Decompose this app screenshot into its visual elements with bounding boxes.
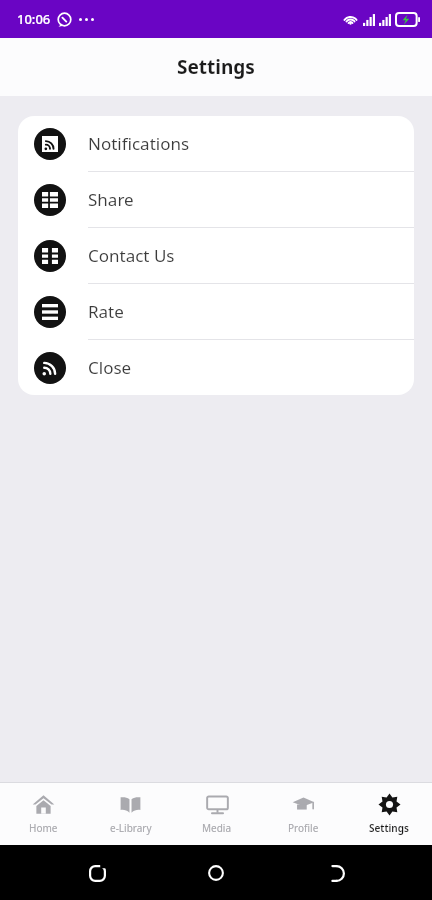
- staticText: Settings: [369, 821, 409, 835]
- button[interactable]: Recents: [74, 850, 120, 896]
- staticText: Profile: [288, 821, 319, 835]
- button[interactable]: Home: [0, 783, 87, 845]
- button[interactable]: e-Library: [87, 783, 174, 845]
- button[interactable]: Media: [174, 783, 260, 845]
- button[interactable]: Settings: [346, 783, 432, 845]
- button[interactable]: Back: [313, 850, 359, 896]
- button[interactable]: Share: [18, 172, 414, 228]
- button[interactable]: Rate: [18, 284, 414, 340]
- staticText: Contact Us: [88, 244, 175, 267]
- staticText: Share: [88, 188, 134, 211]
- staticText: Notifications: [88, 132, 190, 155]
- staticText: Home: [29, 821, 58, 835]
- staticText: Close: [88, 356, 132, 379]
- button[interactable]: Contact Us: [18, 228, 414, 284]
- staticText: 10:06: [17, 10, 51, 28]
- button[interactable]: Close: [18, 340, 414, 395]
- staticText: e-Library: [110, 821, 152, 835]
- button[interactable]: Home: [193, 850, 239, 896]
- staticText: Settings: [177, 54, 255, 80]
- staticText: Rate: [88, 300, 124, 323]
- staticText: Media: [202, 821, 232, 835]
- button[interactable]: Notifications: [18, 116, 414, 172]
- button[interactable]: Profile: [260, 783, 346, 845]
